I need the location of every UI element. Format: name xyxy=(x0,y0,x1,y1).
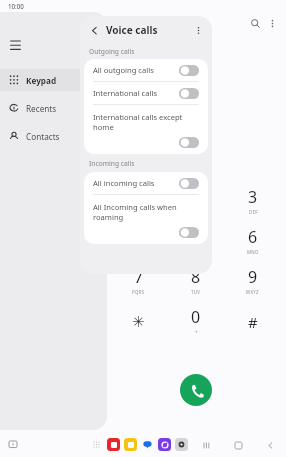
staticText: International calls except home xyxy=(93,112,199,132)
button[interactable]: Home xyxy=(230,437,246,453)
button[interactable]: Screenshot xyxy=(6,438,20,452)
staticText: 1 xyxy=(134,186,144,208)
staticText: 0 xyxy=(191,306,201,328)
staticText: 2 xyxy=(191,186,201,208)
button[interactable]: Recents xyxy=(198,437,214,453)
staticText: DEF xyxy=(249,209,258,215)
button[interactable]: All outgoing calls xyxy=(84,59,208,82)
staticText: ✳ xyxy=(132,313,145,330)
staticText: MNO xyxy=(247,249,259,255)
staticText: All Incoming calls when roaming xyxy=(93,202,199,222)
staticText: + xyxy=(195,329,198,335)
button[interactable]: Menu xyxy=(0,29,30,59)
button[interactable]: App xyxy=(124,438,137,451)
staticText: PQRS xyxy=(132,289,145,295)
staticText: 8 xyxy=(191,266,201,288)
button[interactable]: Back xyxy=(85,21,103,39)
staticText: TUV xyxy=(191,289,201,295)
button[interactable]: Search xyxy=(246,14,264,32)
button[interactable]: App xyxy=(107,438,120,451)
button[interactable]: # xyxy=(224,300,281,340)
button[interactable]: More options xyxy=(189,21,207,39)
staticText: WXYZ xyxy=(246,289,259,295)
button[interactable]: 5 xyxy=(167,220,224,260)
button[interactable]: More options xyxy=(264,15,280,31)
staticText: 5 xyxy=(191,226,201,248)
staticText: 3 xyxy=(248,186,258,208)
button[interactable]: All incoming calls xyxy=(84,172,208,195)
staticText: 6 xyxy=(248,226,258,248)
button[interactable]: 4 xyxy=(110,220,167,260)
staticText: Incoming calls xyxy=(89,159,135,168)
staticText: International calls xyxy=(93,88,179,98)
button[interactable]: 1 xyxy=(110,180,167,220)
button[interactable]: Recents xyxy=(0,97,107,119)
staticText: 9 xyxy=(248,266,258,288)
staticText: 10:00 xyxy=(8,2,24,10)
button[interactable]: Apps xyxy=(90,438,103,451)
staticText: Recents xyxy=(26,103,57,114)
button[interactable]: Keypad xyxy=(0,69,93,91)
staticText: All incoming calls xyxy=(93,178,179,188)
button[interactable]: Camera xyxy=(175,438,188,451)
button[interactable]: 9 xyxy=(224,260,281,300)
button[interactable]: 2 xyxy=(167,180,224,220)
button[interactable]: Messages xyxy=(141,438,154,451)
staticText: Voice calls xyxy=(106,23,189,37)
staticText: All outgoing calls xyxy=(93,65,179,75)
button[interactable]: International calls except home xyxy=(84,105,208,154)
staticText: 7 xyxy=(134,266,144,288)
button[interactable]: 0 xyxy=(167,300,224,340)
button[interactable]: App xyxy=(158,438,171,451)
button[interactable]: Call xyxy=(180,374,212,406)
button[interactable]: Contacts xyxy=(0,125,107,147)
staticText: Keypad xyxy=(26,75,57,86)
button[interactable]: Back xyxy=(262,437,278,453)
staticText: Contacts xyxy=(26,131,60,142)
staticText: Outgoing calls xyxy=(89,47,135,56)
button[interactable]: 3 xyxy=(224,180,281,220)
button[interactable]: 6 xyxy=(224,220,281,260)
button[interactable]: International calls xyxy=(84,82,208,105)
staticText: 4 xyxy=(134,226,144,248)
button[interactable]: 7 xyxy=(110,260,167,300)
staticText: # xyxy=(248,312,258,332)
button[interactable]: 8 xyxy=(167,260,224,300)
button[interactable]: ✳ xyxy=(110,300,167,340)
button[interactable]: All Incoming calls when roaming xyxy=(84,195,208,244)
